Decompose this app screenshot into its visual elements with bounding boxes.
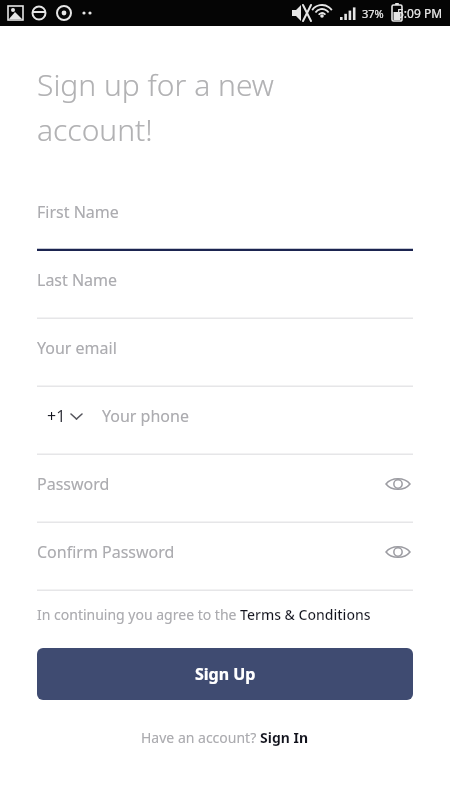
button[interactable]: Have an account? xyxy=(0,728,450,747)
button[interactable]: Sign Up xyxy=(37,648,413,700)
button[interactable]: First Name xyxy=(37,183,413,251)
staticText: Sign up for a new account! xyxy=(37,64,274,149)
button[interactable]: Confirm Password xyxy=(37,523,413,591)
staticText: Your phone xyxy=(102,405,189,427)
button[interactable]: In continuing you agree to the Terms & C… xyxy=(37,605,413,624)
staticText: First Name xyxy=(37,201,119,223)
staticText: Sign Up xyxy=(195,663,256,685)
button[interactable]: Show password xyxy=(383,469,413,499)
staticText: In continuing you agree to the Terms & C… xyxy=(37,605,371,624)
button[interactable]: +1 xyxy=(37,387,413,455)
staticText: Confirm Password xyxy=(37,541,175,563)
staticText: Have an account? xyxy=(141,728,260,747)
staticText: Sign In xyxy=(260,728,309,747)
button[interactable]: +1 xyxy=(47,405,82,427)
button[interactable]: Last Name xyxy=(37,251,413,319)
button[interactable]: Show password xyxy=(383,537,413,567)
button[interactable]: Password xyxy=(37,455,413,523)
button[interactable]: Your email xyxy=(37,319,413,387)
staticText: Your email xyxy=(37,337,117,359)
staticText: Last Name xyxy=(37,269,118,291)
staticText: +1 xyxy=(47,405,66,427)
staticText: Password xyxy=(37,473,110,495)
staticText: 5:09 PM xyxy=(397,5,443,21)
staticText: 37% xyxy=(362,6,384,21)
